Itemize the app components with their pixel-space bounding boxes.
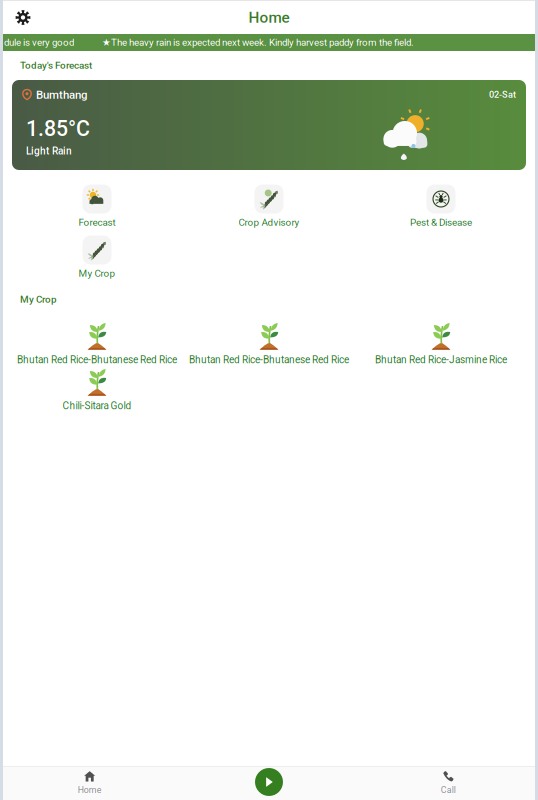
staticText: Today's Forecast — [20, 60, 92, 71]
staticText: Bumthang — [36, 88, 88, 101]
staticText: My Crop — [20, 294, 57, 305]
staticText: Pest & Disease — [410, 216, 472, 228]
staticText: Bhutan Red Rice-Jasmine Rice — [375, 354, 507, 366]
staticText: Crop Advisory — [238, 216, 299, 228]
staticText: Home — [248, 8, 289, 26]
staticText: 1.85°C — [26, 116, 90, 141]
staticText: Forecast — [78, 216, 115, 228]
button[interactable]: Settings — [7, 1, 39, 33]
button[interactable]: My Crop — [11, 233, 183, 284]
button[interactable]: Bhutan Red Rice-Bhutanese Red Rice — [11, 320, 183, 366]
staticText: Call — [441, 785, 456, 795]
button[interactable]: Bhutan Red Rice-Bhutanese Red Rice — [183, 320, 355, 366]
staticText: My Crop — [78, 267, 115, 279]
staticText: 02-Sat — [489, 89, 516, 100]
staticText: Bhutan Red Rice-Bhutanese Red Rice — [189, 354, 349, 366]
button[interactable]: Forecast — [11, 182, 183, 233]
staticText: Home — [78, 785, 102, 795]
staticText: dule is very good — [4, 37, 74, 48]
button[interactable]: Chili-Sitara Gold — [11, 366, 183, 412]
staticText: Light Rain — [26, 145, 72, 157]
staticText: ★The heavy rain is expected next week. K… — [102, 37, 414, 48]
button[interactable]: Voice assistant — [179, 766, 359, 799]
button[interactable]: Play — [255, 768, 283, 796]
button[interactable]: Home — [0, 766, 179, 799]
button[interactable]: Crop Advisory — [183, 182, 355, 233]
button[interactable]: Bhutan Red Rice-Jasmine Rice — [355, 320, 527, 366]
button[interactable]: Call — [359, 766, 538, 799]
staticText: Chili-Sitara Gold — [62, 400, 131, 412]
button[interactable]: Pest & Disease — [355, 182, 527, 233]
staticText: Bhutan Red Rice-Bhutanese Red Rice — [17, 354, 177, 366]
